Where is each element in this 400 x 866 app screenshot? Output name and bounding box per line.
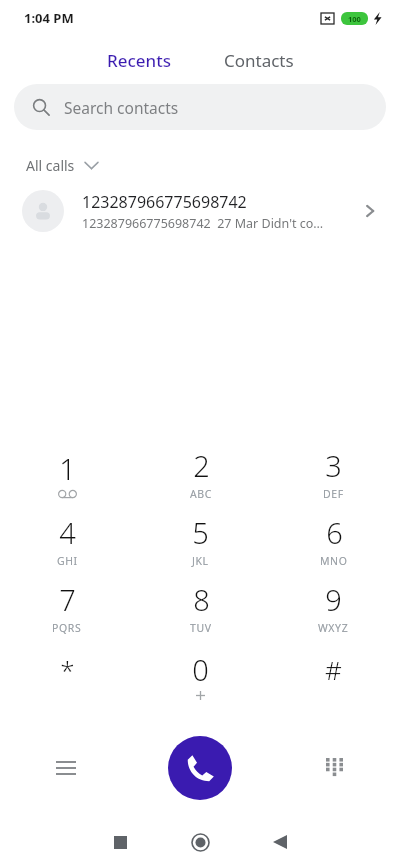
button[interactable]: Dialpad (312, 746, 356, 790)
staticText: PQRS (52, 621, 82, 635)
staticText: 0 (192, 650, 209, 689)
button[interactable]: 8 (134, 574, 267, 641)
button[interactable]: * (0, 641, 134, 708)
button[interactable]: # (267, 641, 400, 708)
staticText: 1 (59, 449, 76, 488)
staticText: 100 (348, 14, 361, 24)
staticText: Search contacts (64, 97, 179, 118)
button[interactable]: 9 (267, 574, 400, 641)
button[interactable]: 0 (134, 641, 267, 708)
staticText: 123287966775698742 27 Mar Didn't co… (82, 215, 324, 232)
staticText: 6 (326, 513, 343, 552)
staticText: 9 (325, 580, 342, 619)
staticText: WXYZ (318, 621, 349, 635)
staticText: 5 (192, 513, 209, 552)
staticText: All calls (26, 156, 75, 175)
staticText: 8 (193, 580, 210, 619)
button[interactable]: Call (168, 736, 232, 800)
staticText: Contacts (224, 49, 294, 72)
button[interactable]: 7 (0, 574, 134, 641)
staticText: 3 (325, 446, 342, 485)
staticText: 7 (59, 580, 76, 619)
staticText: Recents (107, 49, 172, 72)
button[interactable]: 6 (267, 507, 400, 574)
button[interactable]: 5 (134, 507, 267, 574)
button[interactable]: 123287966775698742 (0, 181, 400, 241)
button[interactable]: 1 (0, 440, 134, 507)
button[interactable]: Call details (350, 191, 390, 231)
staticText: DEF (323, 487, 344, 501)
staticText: 1:04 PM (24, 9, 74, 27)
button[interactable]: 3 (267, 440, 400, 507)
staticText: GHI (57, 554, 78, 568)
button[interactable]: Recents (92, 818, 148, 866)
button[interactable]: More options (44, 746, 88, 790)
button[interactable]: 4 (0, 507, 134, 574)
staticText: ABC (190, 487, 212, 501)
staticText: 123287966775698742 (82, 191, 247, 213)
staticText: 4 (59, 513, 76, 552)
button[interactable]: Contacts (210, 43, 308, 78)
button[interactable]: Home (172, 818, 228, 866)
staticText: 2 (193, 446, 210, 485)
staticText: JKL (192, 554, 209, 568)
button[interactable]: All calls (14, 150, 110, 181)
button[interactable]: Search contacts (14, 84, 386, 130)
button[interactable]: Recents (93, 43, 186, 78)
button[interactable]: 2 (134, 440, 267, 507)
staticText: * (60, 652, 75, 687)
staticText: # (325, 652, 342, 687)
button[interactable]: Back (252, 818, 308, 866)
staticText: TUV (190, 621, 212, 635)
staticText: MNO (320, 554, 348, 568)
